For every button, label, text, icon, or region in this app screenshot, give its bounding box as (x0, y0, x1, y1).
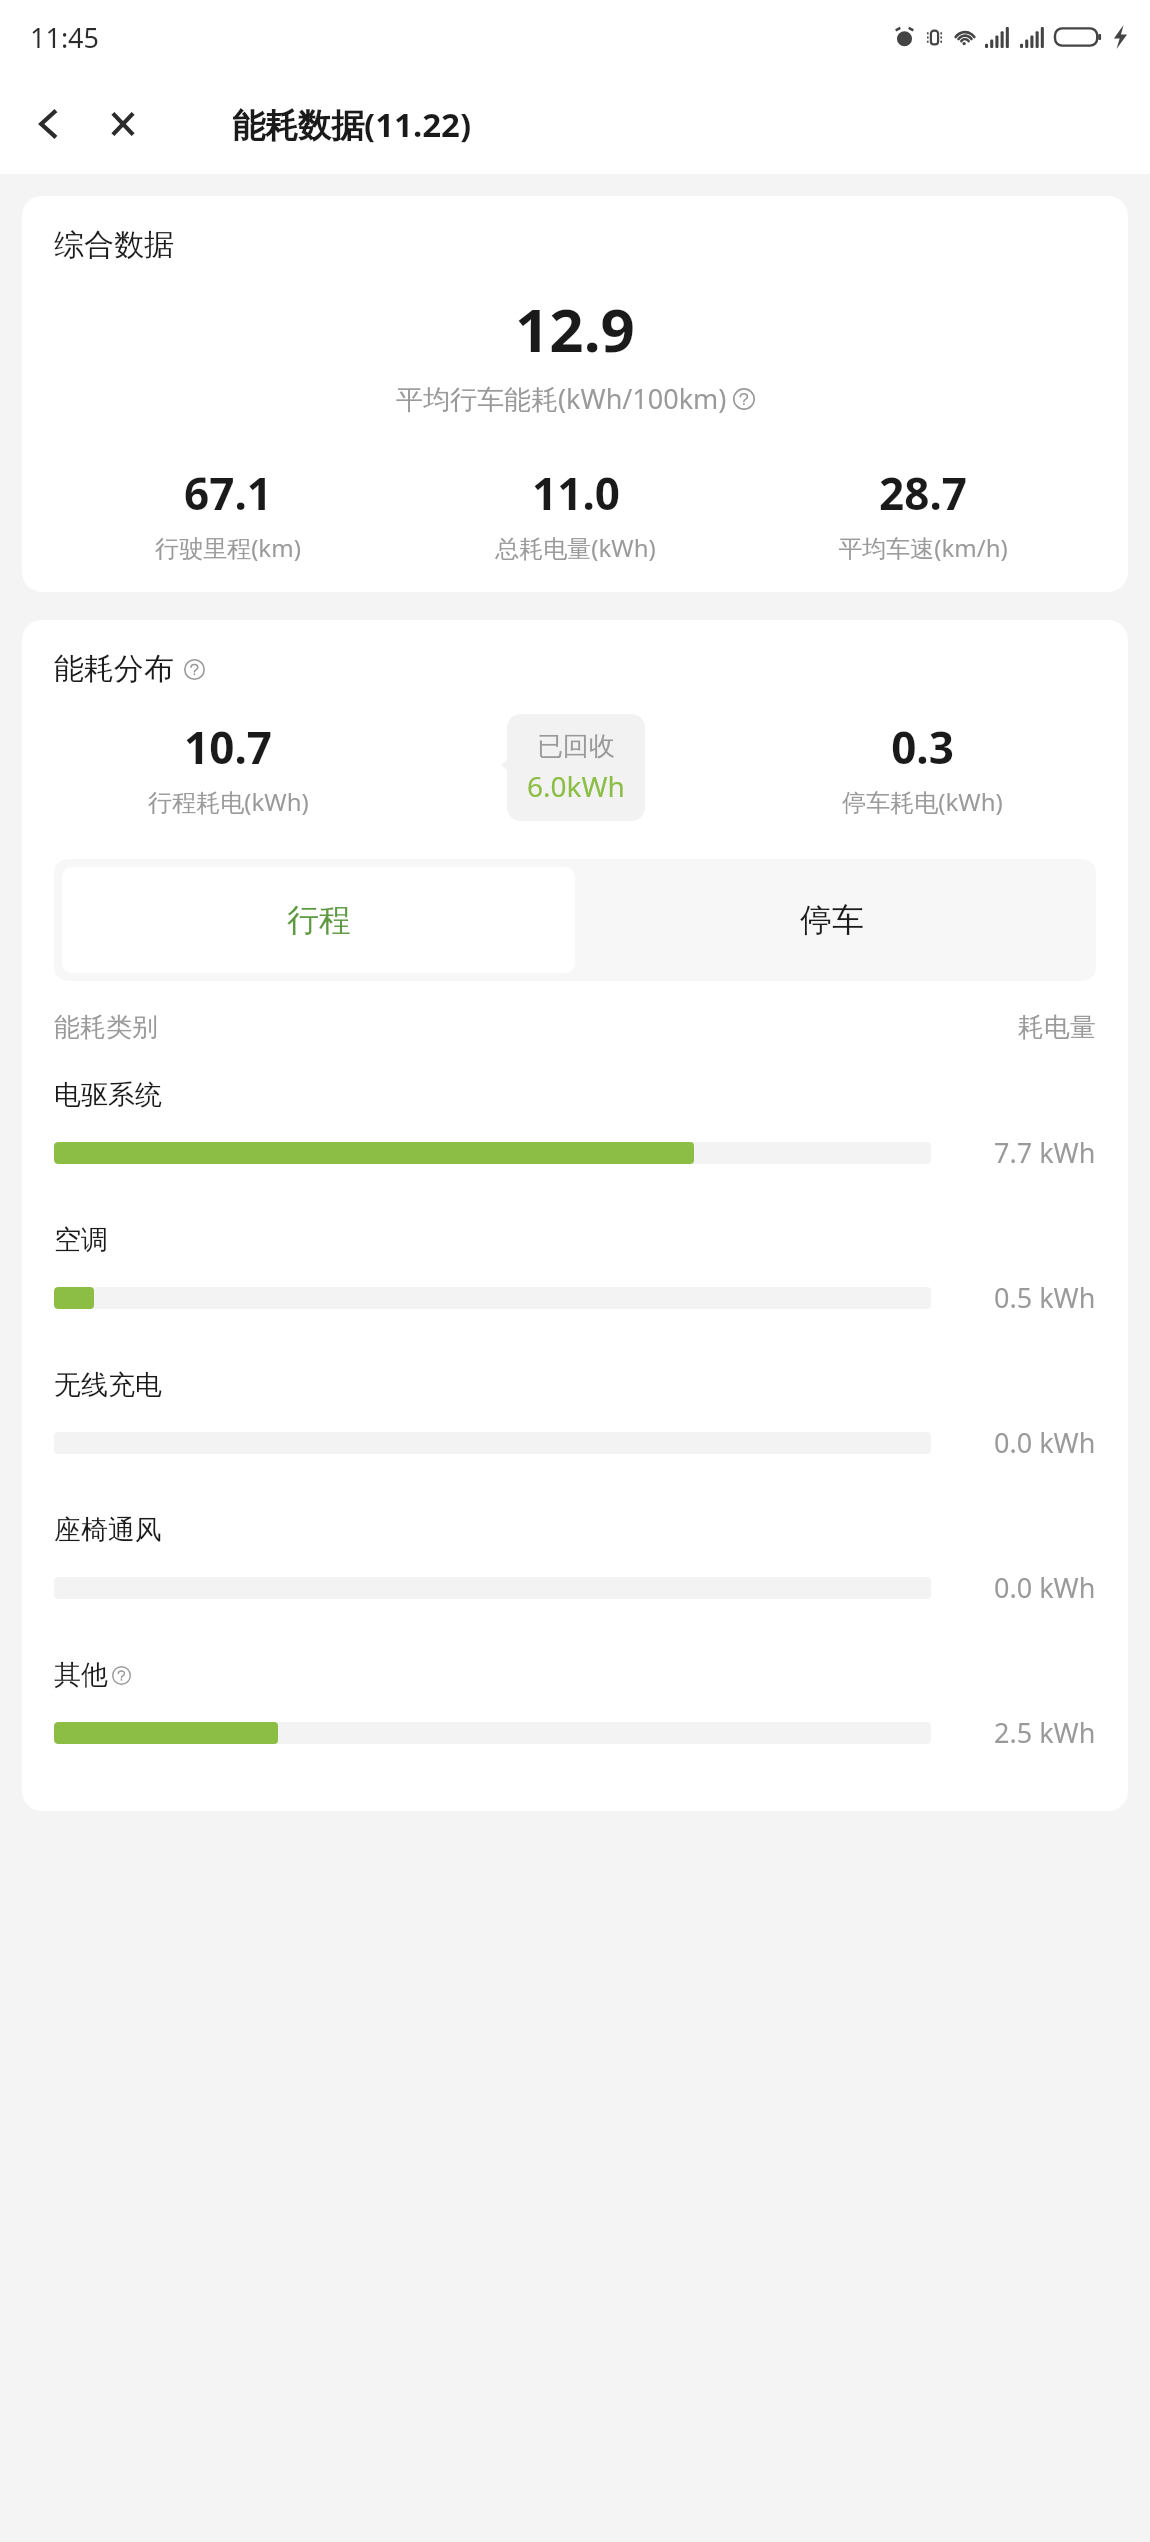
staticText: 12.9 (515, 288, 635, 370)
button[interactable]: Close (92, 93, 154, 155)
staticText: 7.7 kWh (994, 1134, 1096, 1171)
staticText: 行驶里程(km) (155, 531, 301, 564)
staticText: 0.3 (891, 717, 954, 777)
staticText: 耗电量 (1018, 1011, 1096, 1044)
staticText: 停车 (800, 900, 864, 940)
staticText: 能耗分布 (54, 650, 174, 688)
staticText: 平均车速(km/h) (838, 531, 1008, 564)
staticText: 行程 (287, 900, 351, 940)
staticText: 已回收 (537, 730, 615, 763)
staticText: 0.5 kWh (994, 1279, 1096, 1316)
staticText: 综合数据 (54, 226, 174, 264)
staticText: 11:45 (30, 19, 100, 56)
staticText: 总耗电量(kWh) (495, 531, 656, 564)
button[interactable]: Back (18, 93, 80, 155)
staticText: 2.5 kWh (994, 1714, 1096, 1751)
staticText: 无线充电 (54, 1368, 162, 1402)
staticText: 座椅通风 (54, 1513, 162, 1547)
staticText: 0.0 kWh (994, 1569, 1096, 1606)
staticText: 28.7 (879, 463, 967, 523)
staticText: 能耗数据(11.22) (232, 102, 472, 147)
staticText: 平均行车能耗(kWh/100km) (396, 380, 727, 417)
staticText: 行程耗电(kWh) (148, 785, 309, 818)
staticText: 停车耗电(kWh) (842, 785, 1003, 818)
button[interactable]: 说明 (733, 388, 755, 410)
staticText: 电驱系统 (54, 1078, 162, 1112)
staticText: 67.1 (184, 463, 272, 523)
staticText: 11.0 (532, 463, 620, 523)
staticText: 空调 (54, 1223, 108, 1257)
button[interactable]: 行程 (62, 867, 575, 973)
staticText: 其他 (54, 1658, 108, 1692)
button[interactable]: 停车 (575, 867, 1088, 973)
button[interactable]: 说明 (184, 659, 205, 680)
staticText: 0.0 kWh (994, 1424, 1096, 1461)
staticText: 能耗类别 (54, 1011, 158, 1044)
staticText: 10.7 (184, 717, 272, 777)
staticText: 6.0kWh (527, 767, 625, 805)
